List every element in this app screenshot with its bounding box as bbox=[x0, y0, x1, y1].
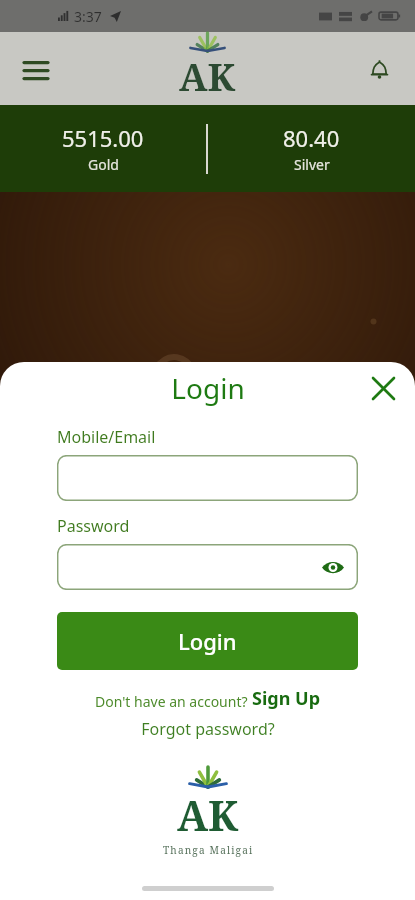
staticText: Don't have an account? bbox=[95, 692, 252, 711]
button[interactable]: Login bbox=[57, 612, 358, 670]
button[interactable]: Don't have an account? bbox=[57, 686, 358, 711]
button[interactable] bbox=[57, 455, 358, 501]
staticText: Password bbox=[57, 515, 130, 537]
button[interactable]: Notifications bbox=[359, 49, 399, 89]
staticText: Login bbox=[178, 626, 237, 656]
staticText: Forgot password? bbox=[141, 718, 275, 740]
staticText: 3:37 bbox=[74, 7, 102, 26]
button[interactable]: Open navigation menu bbox=[16, 49, 56, 89]
button[interactable]: Show password bbox=[318, 552, 348, 582]
staticText: Sign Up bbox=[252, 686, 321, 711]
staticText: 80.40 bbox=[283, 123, 340, 153]
staticText: AK bbox=[179, 51, 236, 103]
staticText: Mobile/Email bbox=[57, 426, 156, 448]
staticText: AK bbox=[177, 787, 239, 843]
button[interactable]: Close bbox=[365, 370, 401, 406]
staticText: Thanga Maligai bbox=[163, 843, 254, 857]
button[interactable]: Show password bbox=[57, 544, 358, 590]
staticText: Silver bbox=[294, 155, 330, 174]
staticText: Gold bbox=[88, 155, 119, 174]
staticText: Login bbox=[171, 369, 245, 407]
staticText: 5515.00 bbox=[62, 123, 144, 153]
button[interactable]: Forgot password? bbox=[57, 718, 358, 740]
